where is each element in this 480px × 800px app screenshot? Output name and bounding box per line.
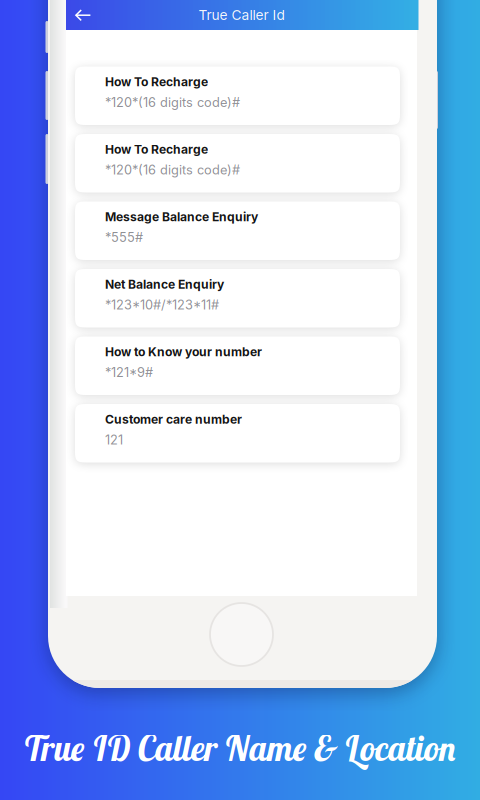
button[interactable]: Message Balance Enquiry: [75, 201, 400, 260]
staticText: True Caller Id: [198, 7, 284, 23]
staticText: True ID Caller Name & Location: [23, 726, 457, 770]
button[interactable]: How To Recharge: [75, 134, 400, 192]
staticText: How To Recharge: [105, 142, 208, 157]
button[interactable]: How To Recharge: [75, 66, 400, 125]
staticText: How To Recharge: [105, 74, 208, 89]
button[interactable]: How to Know your number: [75, 336, 400, 395]
staticText: How to Know your number: [105, 344, 262, 359]
staticText: *121*9#: [105, 365, 153, 380]
button[interactable]: Net Balance Enquiry: [75, 269, 400, 327]
button[interactable]: Customer care number: [75, 404, 400, 462]
staticText: Message Balance Enquiry: [105, 209, 258, 224]
staticText: Net Balance Enquiry: [105, 277, 224, 292]
staticText: Customer care number: [105, 412, 242, 427]
staticText: *120*(16 digits code)#: [105, 95, 240, 110]
staticText: *120*(16 digits code)#: [105, 162, 240, 178]
staticText: *555#: [105, 230, 143, 245]
staticText: *123*10#/*123*11#: [105, 297, 219, 313]
button[interactable]: Back: [66, 0, 96, 30]
staticText: 121: [105, 432, 123, 448]
